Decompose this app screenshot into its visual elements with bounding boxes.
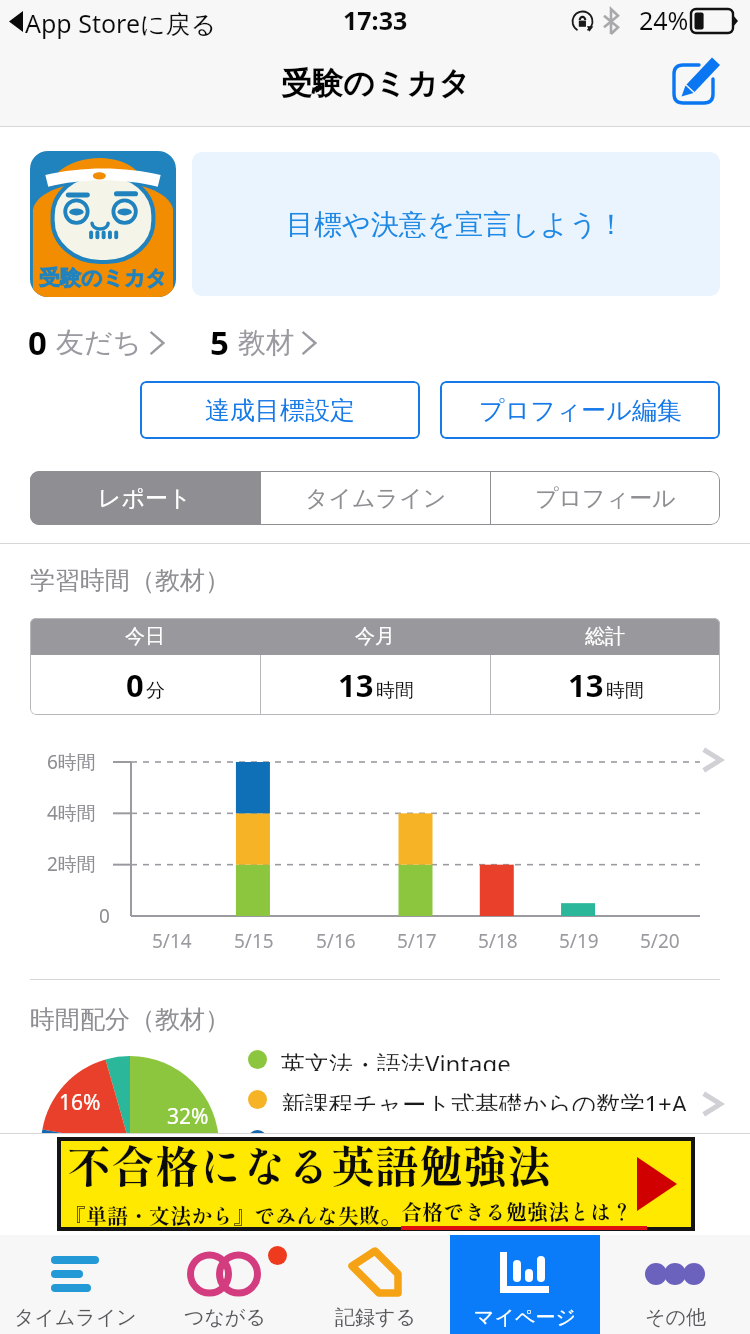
staticText: 4時間 xyxy=(47,800,96,826)
button[interactable]: 達成目標設定 xyxy=(140,381,420,439)
staticText: 5/18 xyxy=(478,928,518,954)
staticText: 13 xyxy=(338,664,374,706)
staticText: 13 xyxy=(568,664,604,706)
staticText: マイページ xyxy=(474,1305,576,1330)
button[interactable]: 不合格になる英語勉強法 xyxy=(61,1141,691,1227)
button[interactable]: タイムライン xyxy=(261,471,490,525)
button[interactable]: Compose post xyxy=(668,53,728,113)
staticText: 合格できる勉強法とは？ xyxy=(401,1196,632,1226)
staticText: 時間 xyxy=(376,679,414,703)
staticText: 5/15 xyxy=(234,928,274,954)
staticText: 学習時間（教材） xyxy=(30,565,230,596)
button[interactable]: その他 xyxy=(600,1235,750,1334)
staticText: 不合格になる英語勉強法 xyxy=(67,1132,551,1196)
staticText: 5/14 xyxy=(152,928,192,954)
staticText: 教材 xyxy=(238,325,294,360)
staticText: 受験のミカタ xyxy=(281,64,470,103)
staticText: 記録する xyxy=(335,1305,416,1330)
button[interactable]: 0 xyxy=(28,320,167,365)
staticText: 5/19 xyxy=(559,928,599,954)
staticText: 今日 xyxy=(125,624,165,649)
staticText: レポート xyxy=(98,484,192,513)
staticText: 『単語・文法から』でみんな失敗。 xyxy=(65,1200,401,1230)
staticText: 分 xyxy=(146,679,165,703)
staticText: 時間 xyxy=(606,679,644,703)
staticText: プロフィール xyxy=(535,484,676,513)
staticText: 5/17 xyxy=(397,928,437,954)
staticText: 6時間 xyxy=(47,749,96,775)
button[interactable]: 目標や決意を宣言しよう！ xyxy=(192,152,720,296)
staticText: 32% xyxy=(167,1102,209,1131)
staticText: 0 xyxy=(28,320,47,365)
staticText: 2時間 xyxy=(47,851,96,877)
staticText: 0 xyxy=(99,903,110,929)
staticText: 5/16 xyxy=(316,928,356,954)
staticText: 目標や決意を宣言しよう！ xyxy=(286,207,626,242)
staticText: 達成目標設定 xyxy=(205,395,355,426)
staticText: 【データの分析】大学入試デ…ラピッド xyxy=(281,1127,713,1134)
button[interactable]: つながる xyxy=(150,1235,300,1334)
button[interactable]: 5 xyxy=(210,320,319,365)
button[interactable]: タイムライン xyxy=(0,1235,150,1334)
staticText: 今月 xyxy=(355,624,395,649)
staticText: 5/20 xyxy=(640,928,680,954)
staticText: タイムライン xyxy=(305,484,447,513)
staticText: プロフィール編集 xyxy=(479,395,682,426)
button[interactable]: マイページ xyxy=(450,1235,600,1334)
staticText: 0 xyxy=(126,664,144,706)
staticText: その他 xyxy=(645,1305,706,1330)
button[interactable]: レポート xyxy=(30,471,260,525)
staticText: 新課程チャート式基礎からの数学1+A xyxy=(281,1087,688,1111)
button[interactable]: More study time xyxy=(698,746,726,774)
button[interactable]: 記録する xyxy=(300,1235,450,1334)
staticText: 受験のミカタ xyxy=(39,265,167,291)
staticText: タイムライン xyxy=(14,1305,137,1330)
staticText: 時間配分（教材） xyxy=(30,1004,230,1035)
staticText: App Storeに戻る xyxy=(25,6,217,40)
staticText: 17:33 xyxy=(343,3,408,37)
staticText: 24% xyxy=(639,3,689,37)
staticText: つながる xyxy=(184,1305,266,1330)
button[interactable]: More time distribution xyxy=(698,1090,726,1118)
staticText: 5 xyxy=(210,320,229,365)
staticText: 英文法・語法Vintage xyxy=(281,1047,511,1071)
button[interactable]: プロフィール xyxy=(491,471,720,525)
staticText: 総計 xyxy=(585,624,625,649)
button[interactable]: プロフィール編集 xyxy=(440,381,720,439)
staticText: 友だち xyxy=(56,325,142,360)
button[interactable]: Profile picture xyxy=(30,151,176,297)
staticText: 16% xyxy=(59,1088,101,1117)
